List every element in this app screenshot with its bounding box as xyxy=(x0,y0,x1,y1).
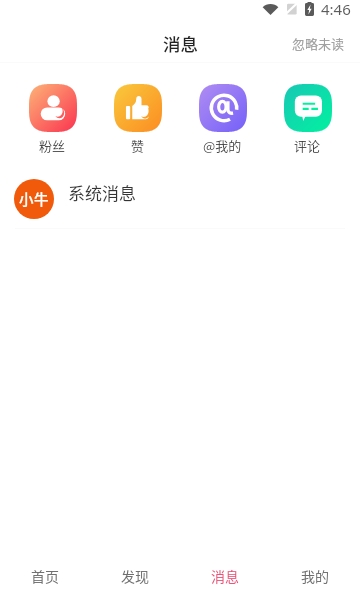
button[interactable]: 评论 xyxy=(265,84,350,155)
button[interactable]: 忽略未读 xyxy=(277,26,360,61)
button[interactable]: 我的 xyxy=(270,552,360,600)
staticText: 首页 xyxy=(31,566,59,586)
staticText: 消息 xyxy=(211,566,239,586)
button[interactable]: 消息 xyxy=(180,552,270,600)
button[interactable]: 发现 xyxy=(90,552,180,600)
button[interactable]: @我的 xyxy=(180,84,265,155)
staticText: 消息 xyxy=(163,31,198,56)
staticText: 赞 xyxy=(131,136,145,155)
staticText: 4:46 xyxy=(321,0,351,19)
staticText: @我的 xyxy=(203,136,242,155)
staticText: 粉丝 xyxy=(39,136,66,155)
button[interactable]: 粉丝 xyxy=(10,84,95,155)
staticText: 发现 xyxy=(121,566,149,586)
button[interactable]: 赞 xyxy=(95,84,180,155)
staticText: 忽略未读 xyxy=(292,34,345,53)
staticText: 系统消息 xyxy=(68,180,136,205)
button[interactable]: 首页 xyxy=(0,552,90,600)
button[interactable]: 小牛 xyxy=(0,170,360,228)
staticText: 我的 xyxy=(301,566,329,586)
staticText: 评论 xyxy=(294,136,321,155)
staticText: 小牛 xyxy=(19,188,49,209)
